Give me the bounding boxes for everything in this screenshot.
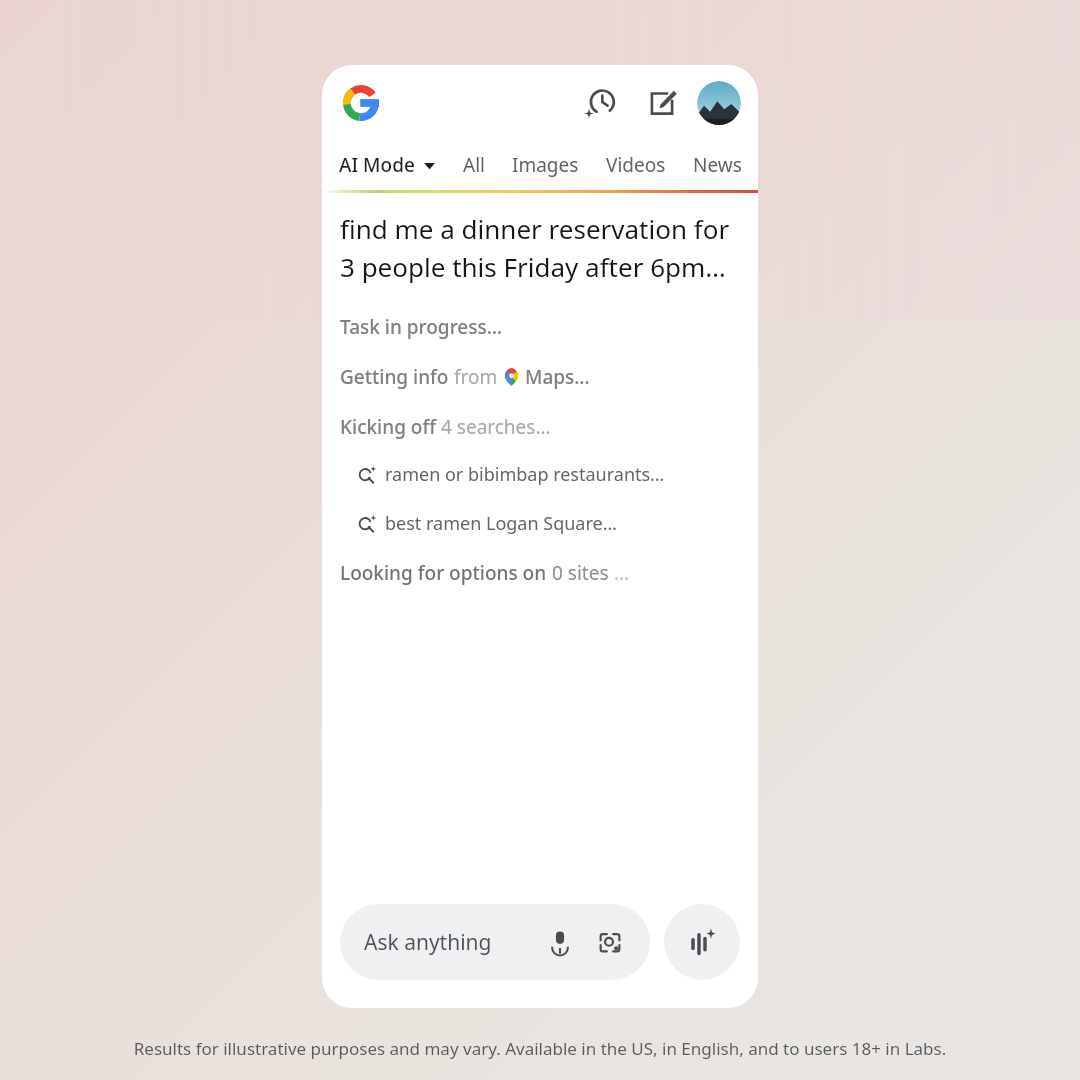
button[interactable]: AI Mode [339, 152, 435, 178]
button[interactable]: best ramen Logan Square… [358, 511, 742, 536]
staticText: Ask anything [364, 928, 492, 957]
staticText: 4 searches… [441, 414, 551, 440]
button[interactable]: Live voice [664, 904, 740, 980]
staticText: AI Mode [339, 152, 415, 178]
staticText: Maps… [520, 364, 590, 390]
staticText: All [463, 152, 485, 178]
button[interactable]: Voice search [542, 924, 578, 960]
button[interactable]: Videos [606, 152, 666, 178]
staticText: 0 sites [552, 560, 614, 586]
staticText: Task in progress… [340, 314, 503, 340]
staticText: Getting info [340, 364, 454, 390]
button[interactable]: New chat [639, 80, 685, 126]
button[interactable]: Account [697, 81, 741, 125]
staticText: Videos [606, 152, 666, 178]
staticText: … [614, 560, 630, 586]
staticText: News [693, 152, 742, 178]
staticText: Results for illustrative purposes and ma… [0, 1037, 1080, 1060]
staticText: best ramen Logan Square… [385, 511, 617, 536]
button[interactable]: Search history [577, 80, 623, 126]
button[interactable]: All [463, 152, 485, 178]
staticText: find me a dinner reservation for 3 peopl… [340, 211, 730, 284]
button[interactable]: ramen or bibimbap restaurants… [358, 462, 742, 487]
button[interactable]: News [693, 152, 742, 178]
staticText: Images [512, 152, 579, 178]
button[interactable]: Google Lens [592, 924, 628, 960]
staticText: from [454, 364, 503, 390]
button[interactable]: Images [512, 152, 579, 178]
button[interactable]: Ask anything [340, 904, 650, 980]
staticText: ramen or bibimbap restaurants… [385, 462, 665, 487]
staticText: Kicking off [340, 414, 441, 440]
button[interactable]: Google [339, 81, 383, 125]
staticText: Looking for options on [340, 560, 552, 586]
